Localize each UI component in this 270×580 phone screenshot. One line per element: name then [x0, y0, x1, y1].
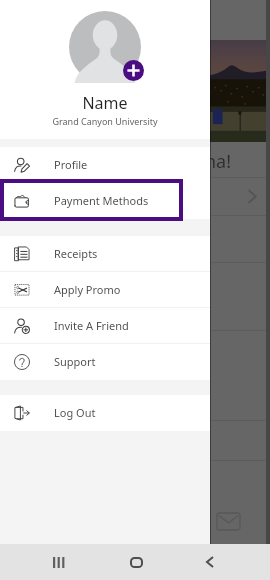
staticText: Log Out: [54, 405, 96, 420]
button[interactable]: Receipts: [0, 236, 210, 272]
button[interactable]: Back: [190, 544, 230, 580]
staticText: Payment Methods: [54, 193, 149, 208]
staticText: Support: [54, 354, 96, 369]
button[interactable]: Add profile photo: [123, 60, 144, 81]
button[interactable]: Log Out: [0, 395, 210, 431]
staticText: Invite A Friend: [54, 318, 129, 333]
staticText: Profile: [54, 157, 88, 172]
staticText: Receipts: [54, 246, 98, 261]
button[interactable]: Payment Methods: [0, 183, 210, 219]
staticText: Apply Promo: [54, 282, 121, 297]
staticText: ha!: [205, 149, 232, 174]
button[interactable]: Profile: [0, 147, 210, 183]
button[interactable]: Invite A Friend: [0, 308, 210, 344]
button[interactable]: Apply Promo: [0, 272, 210, 308]
staticText: Grand Canyon University: [52, 115, 158, 127]
staticText: Name: [82, 92, 128, 114]
button[interactable]: Recent apps: [39, 544, 79, 580]
button[interactable]: Support: [0, 344, 210, 380]
button[interactable]: Home: [116, 544, 156, 580]
